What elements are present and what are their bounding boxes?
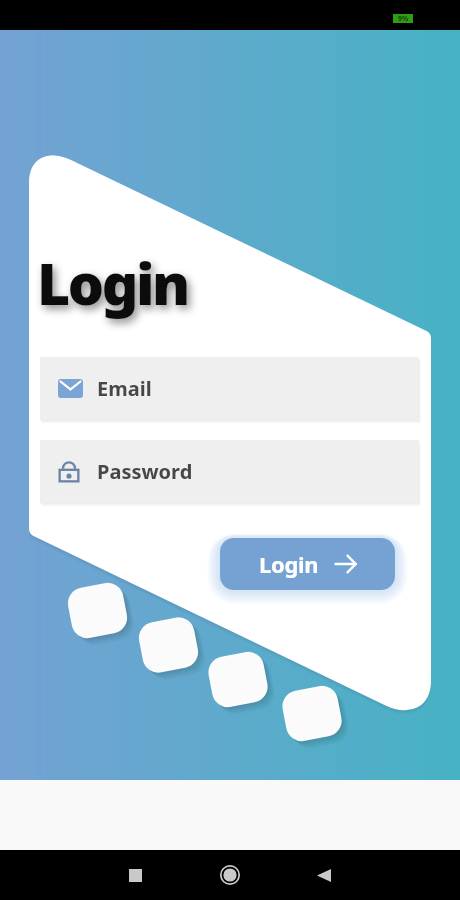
staticText: Email	[97, 375, 152, 402]
button[interactable]: Recent apps	[111, 851, 159, 899]
button[interactable]: Password	[40, 440, 419, 503]
staticText: Login	[259, 549, 319, 579]
staticText: 9%	[398, 14, 409, 23]
staticText: Password	[97, 458, 193, 485]
button[interactable]: Login	[220, 538, 395, 590]
button[interactable]: Email	[40, 357, 419, 420]
staticText: Login	[37, 244, 188, 322]
button[interactable]: Home	[206, 851, 254, 899]
button[interactable]: Back	[300, 851, 348, 899]
